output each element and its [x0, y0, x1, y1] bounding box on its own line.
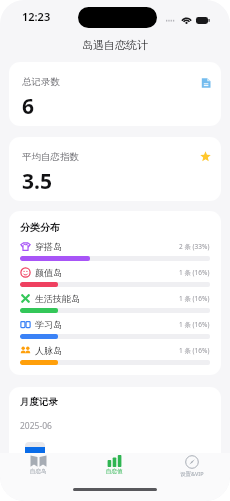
staticText: 1 条 (16%)	[179, 346, 210, 355]
staticText: 分类分布	[20, 221, 60, 234]
staticText: 颜值岛	[35, 267, 62, 278]
staticText: 1 条 (16%)	[179, 268, 210, 277]
staticText: 设置&VIP	[180, 470, 204, 478]
button[interactable]: 设置&VIP	[153, 453, 230, 487]
staticText: 学习岛	[35, 319, 62, 330]
staticText: 1 条 (16%)	[179, 320, 210, 329]
staticText: 生活技能岛	[35, 293, 80, 304]
staticText: 平均自恋指数	[22, 151, 79, 163]
staticText: 人脉岛	[35, 345, 62, 356]
staticText: 自恋值	[106, 468, 123, 475]
staticText: 自恋岛	[30, 468, 47, 475]
button[interactable]: 总记录数	[9, 62, 221, 126]
staticText: 岛遇自恋统计	[82, 38, 148, 52]
staticText: 3.5	[22, 167, 52, 190]
staticText: 2025-06	[20, 420, 52, 432]
button[interactable]: 自恋岛	[0, 453, 76, 487]
button[interactable]: 平均自恋指数	[9, 137, 221, 201]
staticText: 12:23	[22, 9, 51, 24]
button[interactable]: 自恋值	[76, 453, 153, 487]
staticText: 6	[22, 92, 35, 115]
staticText: 1 条 (16%)	[179, 294, 210, 303]
staticText: 月度记录	[20, 396, 58, 408]
staticText: 总记录数	[22, 76, 60, 88]
staticText: 穿搭岛	[35, 241, 62, 252]
staticText: 2 条 (33%)	[179, 242, 210, 251]
